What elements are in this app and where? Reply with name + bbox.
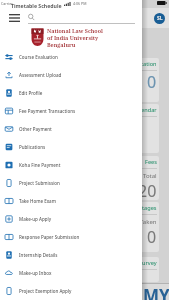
staticText: Assessment Upload: [19, 72, 62, 78]
staticText: Stages: [139, 204, 157, 212]
button[interactable]: Search: [26, 12, 136, 24]
button[interactable]: Internship Details: [0, 246, 142, 264]
button[interactable]: Application: [85, 58, 159, 102]
button[interactable]: Make-up Inbox: [0, 264, 142, 282]
button[interactable]: Koha Fine Payment: [0, 156, 142, 174]
button[interactable]: Open navigation menu: [3, 10, 25, 26]
button[interactable]: Calendar: [7, 104, 81, 153]
button[interactable]: Project Submission: [0, 174, 142, 192]
staticText: Timetable Schedule: [11, 2, 62, 9]
staticText: Koha Fine Payment: [19, 162, 61, 168]
staticText: Taken: [140, 218, 157, 226]
staticText: 4:06 PM: [73, 1, 87, 6]
staticText: Fees: [145, 158, 157, 166]
staticText: Take Home Exam: [19, 198, 56, 204]
button[interactable]: Response Paper Submission: [0, 228, 142, 246]
button[interactable]: Assessment Upload: [0, 66, 142, 84]
button[interactable]: Other Payment: [0, 120, 142, 138]
staticText: Internship Details: [19, 252, 58, 258]
staticText: Survey: [139, 259, 157, 267]
staticText: Application: [127, 60, 157, 68]
button[interactable]: Take Home Exam: [0, 192, 142, 210]
button[interactable]: Project Exemption Apply: [0, 282, 142, 300]
button[interactable]: Survey: [85, 257, 159, 282]
staticText: Fee Payment Transactions: [19, 108, 76, 114]
staticText: Other Payment: [19, 126, 52, 132]
staticText: Response Paper Submission: [19, 234, 80, 240]
staticText: ACADEMY: [87, 284, 169, 300]
button[interactable]: Profile: [154, 13, 165, 24]
button[interactable]: Survey: [7, 257, 81, 282]
staticText: 20: [138, 180, 157, 200]
staticText: of India University: [47, 34, 99, 41]
staticText: Edit Profile: [19, 90, 43, 96]
staticText: Calendar: [133, 106, 157, 114]
button[interactable]: Fees: [7, 156, 81, 200]
button[interactable]: Edit Profile: [0, 84, 142, 102]
button[interactable]: Application: [7, 58, 81, 102]
button[interactable]: Stages: [85, 202, 159, 252]
staticText: Course Evaluation: [19, 54, 58, 60]
staticText: Project Submission: [19, 180, 60, 186]
button[interactable]: Course Evaluation: [0, 48, 142, 66]
staticText: SL: [157, 15, 163, 22]
staticText: Project Exemption Apply: [19, 288, 72, 294]
staticText: Make-up Apply: [19, 216, 52, 222]
staticText: Calendar: [55, 106, 79, 114]
button[interactable]: Make-up Apply: [0, 210, 142, 228]
button[interactable]: Fee Payment Transactions: [0, 102, 142, 120]
button[interactable]: Fees: [85, 156, 159, 200]
staticText: Bengaluru: [47, 41, 76, 48]
staticText: National Law School: [47, 27, 103, 34]
staticText: 0: [147, 71, 157, 93]
staticText: Publications: [19, 144, 46, 150]
button[interactable]: Stages: [7, 202, 81, 252]
staticText: 0: [69, 226, 79, 248]
button[interactable]: Publications: [0, 138, 142, 156]
staticText: Make-up Inbox: [19, 270, 52, 276]
staticText: Total: [143, 172, 157, 180]
staticText: 0: [147, 226, 157, 248]
button[interactable]: Calendar: [85, 104, 159, 153]
staticText: Carrier: [1, 1, 13, 6]
